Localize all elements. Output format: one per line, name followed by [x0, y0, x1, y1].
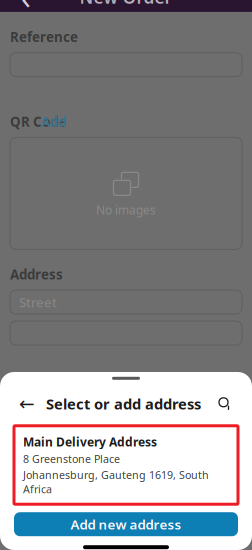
staticText: 8 Greenstone Place [23, 452, 120, 466]
button[interactable]: Add new address [14, 512, 238, 536]
staticText: Johannesburg, Gauteng 1619, South Africa [23, 468, 209, 496]
staticText: Add new address [70, 515, 181, 533]
staticText: Main Delivery Address [23, 434, 157, 450]
staticText: QR Code [10, 113, 66, 130]
button[interactable]: Back [8, 0, 44, 12]
button[interactable]: Add [41, 113, 66, 130]
button[interactable]: Back [14, 391, 40, 417]
staticText: Reference [10, 28, 78, 46]
button[interactable]: Search [212, 391, 238, 417]
staticText: New Order [79, 0, 172, 8]
staticText: ← [19, 393, 35, 414]
staticText: Street [19, 293, 57, 311]
staticText: Add [41, 113, 66, 130]
staticText: No images [96, 202, 156, 218]
staticText: ‹ [21, 0, 31, 18]
staticText: Address [10, 265, 63, 283]
button[interactable]: Main Delivery Address [14, 426, 238, 504]
staticText: Select or add address [46, 394, 201, 413]
